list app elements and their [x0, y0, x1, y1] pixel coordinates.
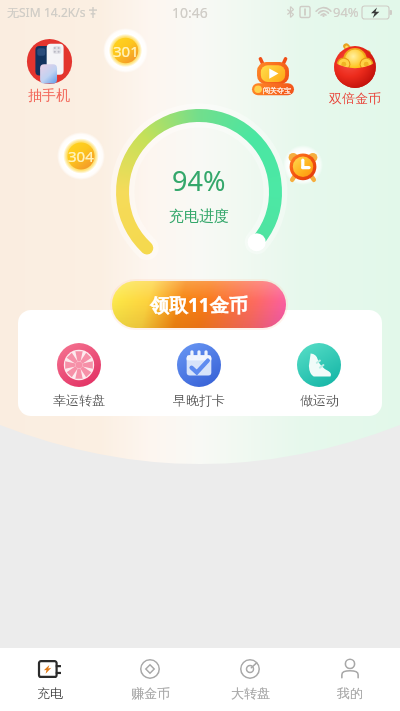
button[interactable]: 领取11金币 [112, 281, 286, 328]
button[interactable]: 大转盘 [200, 648, 300, 711]
staticText: 94% [172, 162, 226, 199]
staticText: 赚金币 [131, 685, 170, 701]
staticText: 领取11金币 [150, 292, 248, 318]
staticText: 14.2K/s [44, 4, 86, 20]
staticText: 94% [333, 3, 359, 21]
staticText: 304 [68, 146, 94, 166]
staticText: 抽手机 [28, 87, 70, 105]
button[interactable]: 做运动 [289, 343, 349, 408]
staticText: 无SIM [7, 4, 41, 20]
staticText: 充电 [37, 685, 63, 701]
button[interactable]: 充电 [0, 648, 100, 711]
staticText: 我的 [337, 685, 363, 701]
staticText: 301 [113, 41, 139, 61]
button[interactable]: 幸运转盘 [49, 343, 109, 408]
button[interactable]: 早晚打卡 [169, 343, 229, 408]
button[interactable]: 赚金币 [100, 648, 200, 711]
staticText: 闯关夺宝 [263, 86, 291, 95]
staticText: 双倍金币 [329, 90, 381, 106]
staticText: 大转盘 [231, 685, 270, 701]
staticText: 幸运转盘 [53, 392, 105, 408]
staticText: 做运动 [300, 392, 339, 408]
button[interactable]: 闹钟任务 [283, 145, 323, 185]
button[interactable]: 抽手机 [23, 38, 75, 105]
staticText: 10:46 [172, 3, 208, 22]
staticText: 充电进度 [169, 207, 229, 226]
button[interactable]: 304 [57, 132, 105, 180]
button[interactable]: 我的 [300, 648, 400, 711]
button[interactable]: 双倍金币 [326, 45, 384, 106]
button[interactable]: 301 [103, 28, 148, 73]
button[interactable]: 闯关夺宝 [252, 58, 294, 98]
staticText: 早晚打卡 [173, 392, 225, 408]
